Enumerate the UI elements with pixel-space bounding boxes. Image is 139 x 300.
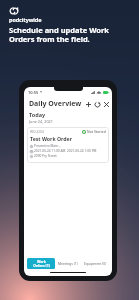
button[interactable]: Equipment (0) — [82, 258, 109, 269]
staticText: Today — [29, 111, 46, 118]
button[interactable]: Add work order — [85, 101, 92, 108]
staticText: 10:55 — [28, 90, 39, 95]
staticText: 2021-06-24 11:00 AM 2021-06-24 1:00 PM — [34, 149, 97, 153]
button[interactable]: Close — [103, 101, 110, 108]
button[interactable]: WO-2204 — [27, 127, 109, 163]
staticText: June 24, 2021 — [29, 119, 53, 124]
button[interactable]: Work Orders (1) — [27, 258, 55, 269]
staticText: Meetings (1) — [58, 261, 78, 266]
staticText: 2090 Pry Street — [34, 154, 57, 158]
staticText: Preventive Main... — [34, 144, 61, 148]
staticText: podcitywide — [9, 16, 42, 23]
staticText: Daily Overview — [29, 99, 82, 109]
button[interactable]: Meetings (1) — [56, 258, 80, 269]
staticText: WO-2204 — [30, 130, 44, 134]
staticText: Not Started — [87, 129, 106, 134]
staticText: Equipment (0) — [84, 261, 107, 266]
staticText: Work Orders (1) — [33, 259, 50, 268]
staticText: Schedule and update Work Orders from the… — [9, 25, 110, 44]
button[interactable]: Refresh — [94, 101, 101, 108]
staticText: Test Work Order — [30, 135, 72, 142]
